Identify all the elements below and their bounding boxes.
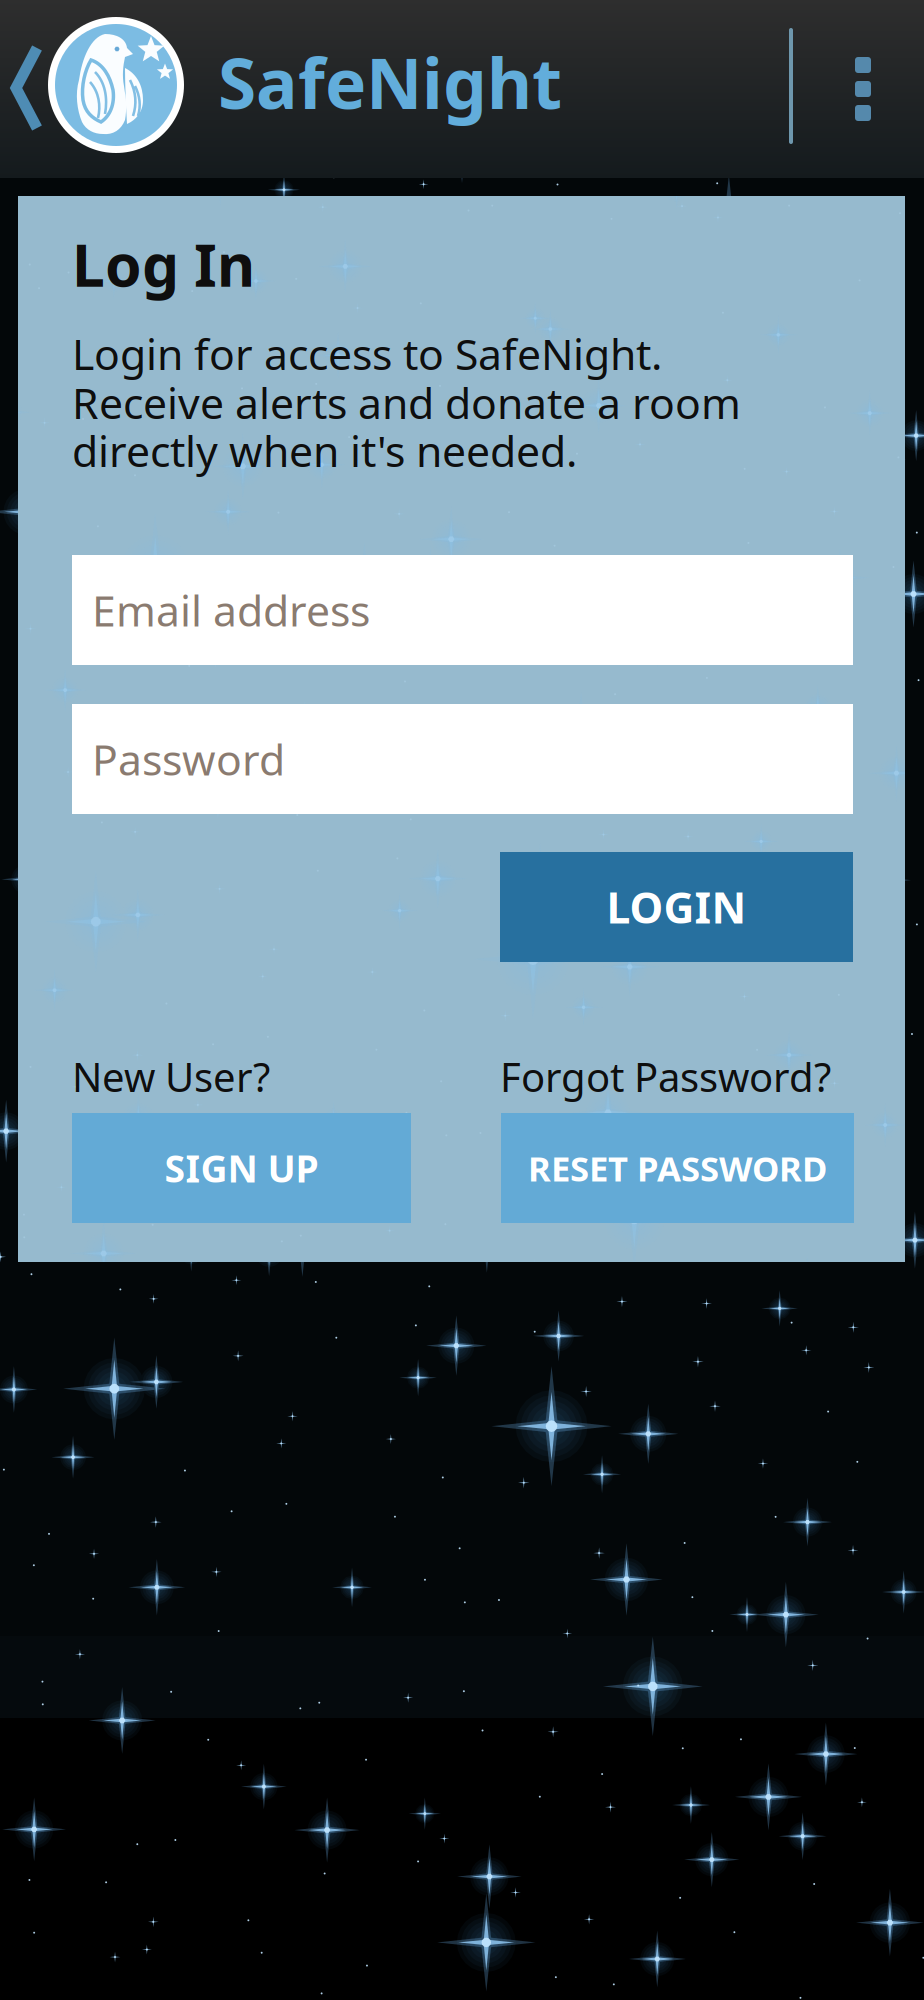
button[interactable]: RESET PASSWORD xyxy=(501,1113,854,1223)
staticText: Forgot Password? xyxy=(500,1050,831,1103)
staticText: Email address xyxy=(92,582,370,638)
button[interactable]: Back xyxy=(0,20,52,156)
staticText: Password xyxy=(92,731,285,787)
button[interactable]: LOGIN xyxy=(500,852,853,962)
staticText: directly when it's needed. xyxy=(72,422,577,479)
staticText: SIGN UP xyxy=(164,1143,318,1193)
staticText: SafeNight xyxy=(218,36,562,128)
staticText: Receive alerts and donate a room xyxy=(72,374,741,431)
staticText: Login for access to SafeNight. xyxy=(72,325,662,382)
button[interactable]: SIGN UP xyxy=(72,1113,411,1223)
button[interactable]: More options xyxy=(823,22,903,156)
staticText: LOGIN xyxy=(606,879,746,935)
staticText: Log In xyxy=(72,225,255,303)
staticText: New User? xyxy=(72,1050,270,1103)
staticText: RESET PASSWORD xyxy=(528,1145,827,1191)
